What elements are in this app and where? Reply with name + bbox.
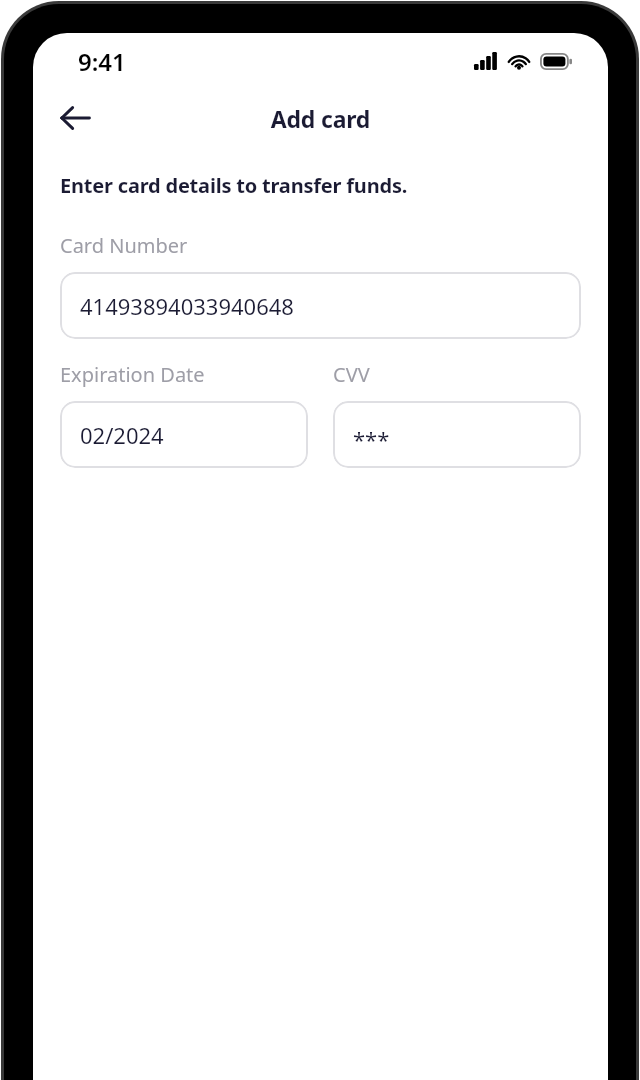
staticText: Add card [33, 103, 608, 134]
button[interactable]: 41493894033940648 [60, 272, 581, 339]
staticText: Expiration Date [60, 361, 205, 388]
staticText: Enter card details to transfer funds. [60, 172, 408, 199]
button[interactable]: *** [333, 401, 581, 468]
staticText: Card Number [60, 232, 188, 259]
staticText: 9:41 [78, 45, 126, 78]
staticText: *** [353, 424, 390, 454]
button[interactable]: Back [51, 94, 99, 142]
staticText: CVV [333, 361, 370, 388]
staticText: 02/2024 [80, 420, 164, 450]
staticText: 41493894033940648 [80, 291, 294, 321]
button[interactable]: 02/2024 [60, 401, 308, 468]
